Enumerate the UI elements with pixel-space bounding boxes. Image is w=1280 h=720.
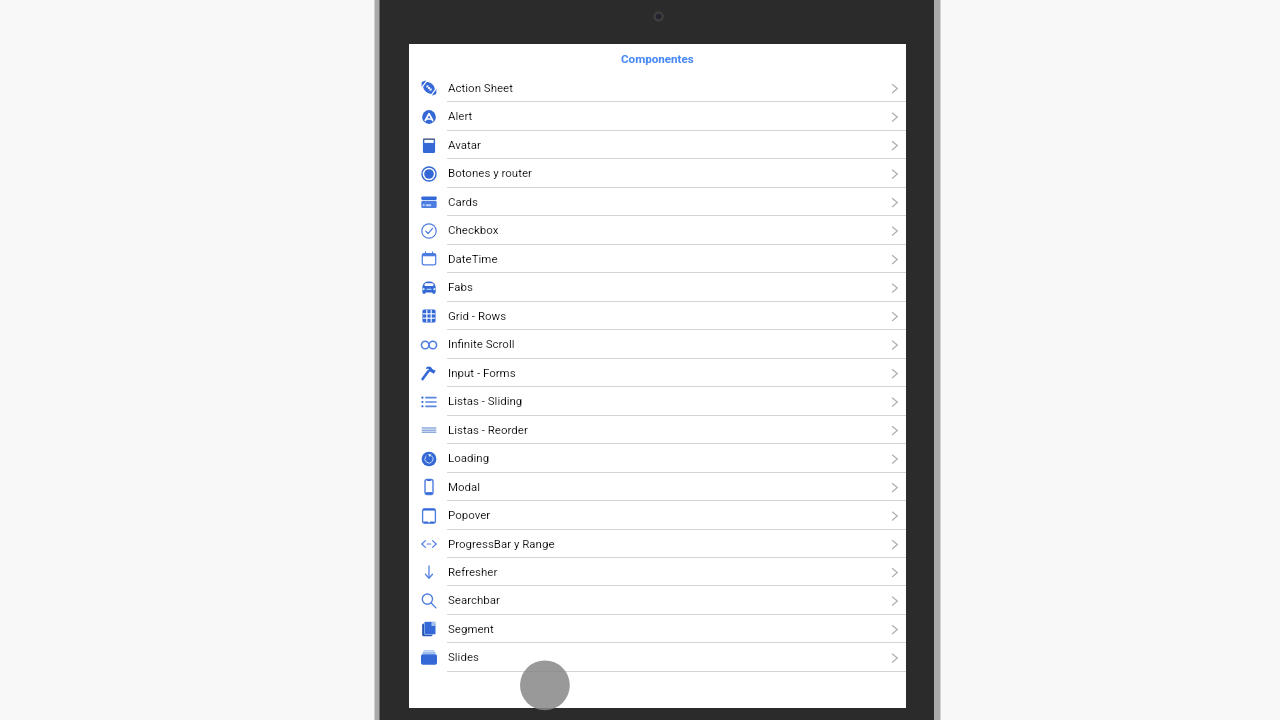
- staticText: Action Sheet: [448, 81, 513, 94]
- staticText: Popover: [448, 508, 491, 521]
- staticText: Cards: [448, 195, 478, 208]
- button[interactable]: Refresher: [409, 558, 906, 586]
- staticText: Listas - Reorder: [448, 423, 528, 436]
- staticText: Input - Forms: [448, 366, 516, 379]
- button[interactable]: DateTime: [409, 245, 906, 273]
- button[interactable]: Infinite Scroll: [409, 330, 906, 359]
- staticText: DateTime: [448, 252, 498, 265]
- staticText: Slides: [448, 650, 479, 663]
- button[interactable]: Action Sheet: [409, 74, 906, 102]
- staticText: Modal: [448, 480, 481, 493]
- staticText: Componentes: [621, 52, 694, 66]
- button[interactable]: Grid - Rows: [409, 302, 906, 330]
- staticText: ProgressBar y Range: [448, 537, 555, 550]
- button[interactable]: ProgressBar y Range: [409, 530, 906, 558]
- staticText: Infinite Scroll: [448, 337, 515, 350]
- staticText: Grid - Rows: [448, 309, 507, 322]
- button[interactable]: Input - Forms: [409, 359, 906, 387]
- button[interactable]: Segment: [409, 615, 906, 643]
- button[interactable]: Loading: [409, 444, 906, 473]
- button[interactable]: Searchbar: [409, 586, 906, 615]
- staticText: Refresher: [448, 565, 498, 578]
- button[interactable]: Fabs: [409, 273, 906, 302]
- staticText: Avatar: [448, 138, 481, 151]
- staticText: Segment: [448, 622, 494, 635]
- button[interactable]: Slides: [409, 643, 906, 672]
- button[interactable]: Popover: [409, 501, 906, 530]
- staticText: Botones y router: [448, 166, 532, 179]
- button[interactable]: Checkbox: [409, 216, 906, 245]
- staticText: Alert: [448, 109, 473, 122]
- staticText: Checkbox: [448, 223, 499, 236]
- staticText: Searchbar: [448, 593, 500, 606]
- button[interactable]: Botones y router: [409, 159, 906, 188]
- button[interactable]: Listas - Sliding: [409, 387, 906, 416]
- button[interactable]: Avatar: [409, 131, 906, 159]
- staticText: Loading: [448, 451, 490, 464]
- button[interactable]: Modal: [409, 473, 906, 501]
- button[interactable]: Cards: [409, 188, 906, 216]
- button[interactable]: Listas - Reorder: [409, 416, 906, 444]
- button[interactable]: Alert: [409, 102, 906, 131]
- staticText: Fabs: [448, 280, 473, 293]
- staticText: Listas - Sliding: [448, 394, 523, 407]
